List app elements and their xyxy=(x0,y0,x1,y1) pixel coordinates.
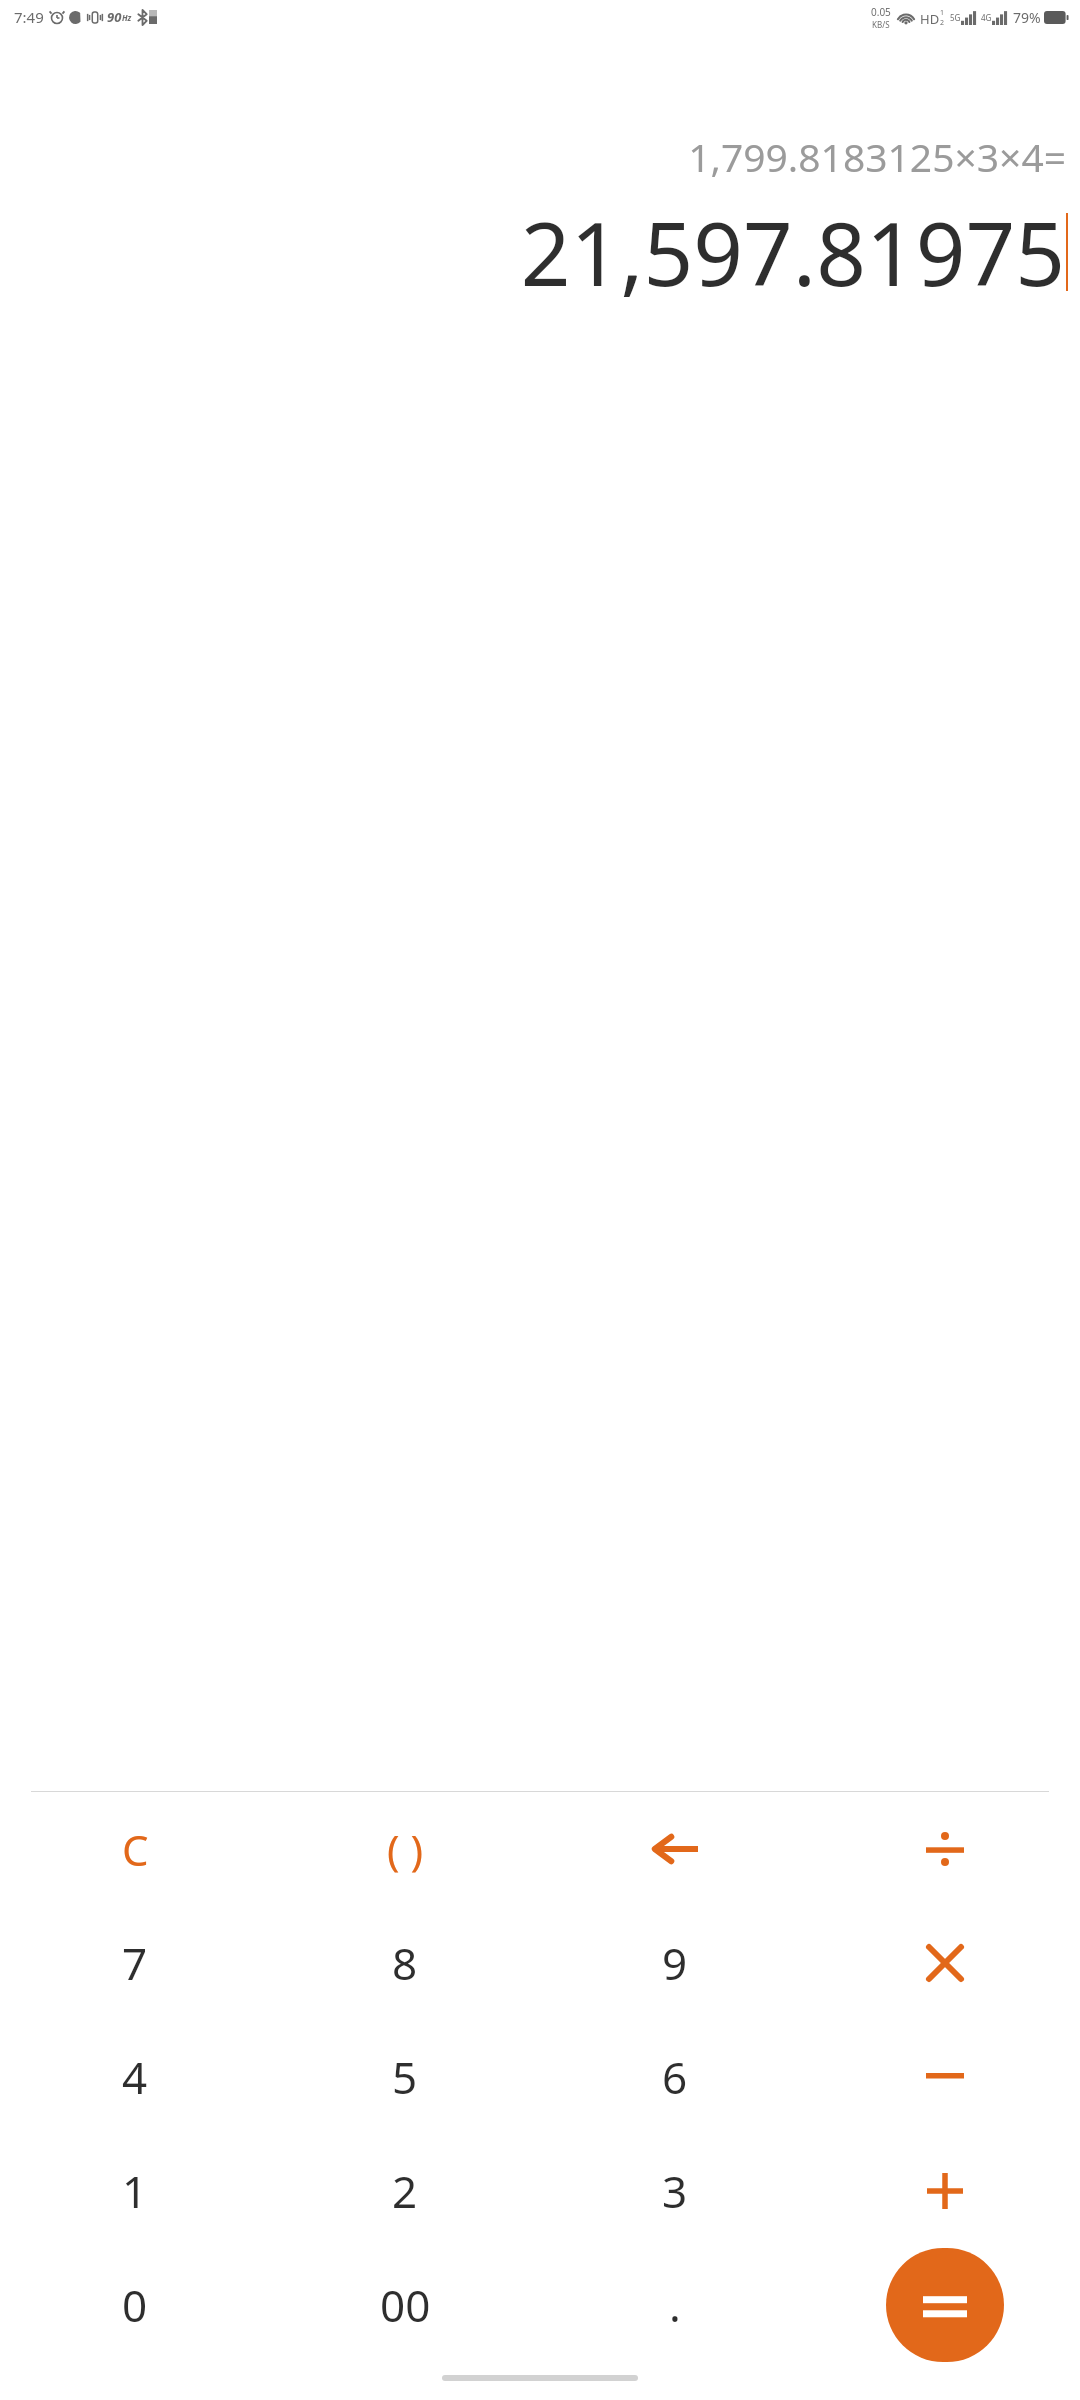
button[interactable]: 1 xyxy=(0,2134,270,2248)
staticText: 21,597.81975 xyxy=(520,193,1065,311)
staticText: 7 xyxy=(122,1933,148,1993)
button[interactable]: Multiply xyxy=(810,1906,1080,2020)
staticText: 4 xyxy=(122,2047,148,2107)
button[interactable]: 5 xyxy=(270,2020,540,2134)
staticText: 5G xyxy=(950,12,961,23)
staticText: HD xyxy=(920,10,940,28)
button[interactable]: 3 xyxy=(540,2134,810,2248)
staticText: 3 xyxy=(662,2161,688,2221)
button[interactable]: 6 xyxy=(540,2020,810,2134)
button[interactable]: 8 xyxy=(270,1906,540,2020)
button[interactable]: 9 xyxy=(540,1906,810,2020)
button[interactable]: ( ) xyxy=(270,1792,540,1906)
staticText: 8 xyxy=(392,1933,418,1993)
staticText: 6 xyxy=(662,2047,688,2107)
button[interactable]: C xyxy=(0,1792,270,1906)
staticText: Hz xyxy=(122,12,132,23)
staticText: . xyxy=(669,2275,681,2335)
button[interactable]: Plus xyxy=(810,2134,1080,2248)
staticText: 5 xyxy=(392,2047,418,2107)
staticText: 90 xyxy=(107,8,122,26)
button[interactable]: Backspace xyxy=(540,1792,810,1906)
staticText: 00 xyxy=(380,2275,431,2335)
staticText: 0.05 xyxy=(871,5,891,19)
staticText: 79% xyxy=(1013,8,1041,27)
staticText: 2 xyxy=(392,2161,418,2221)
staticText: 7:49 xyxy=(14,7,44,27)
staticText: 9 xyxy=(662,1933,688,1993)
button[interactable]: Divide xyxy=(810,1792,1080,1906)
button[interactable]: Minus xyxy=(810,2020,1080,2134)
staticText: 1 xyxy=(122,2161,148,2221)
button[interactable]: 0 xyxy=(0,2248,270,2362)
button[interactable]: Equals xyxy=(886,2248,1004,2362)
button[interactable]: 00 xyxy=(270,2248,540,2362)
button[interactable]: . xyxy=(540,2248,810,2362)
button[interactable]: 4 xyxy=(0,2020,270,2134)
button[interactable]: 2 xyxy=(270,2134,540,2248)
staticText: KB/S xyxy=(872,19,890,30)
staticText: 4G xyxy=(981,12,992,23)
button[interactable]: 7 xyxy=(0,1906,270,2020)
staticText: 1 xyxy=(940,8,945,18)
staticText: 0 xyxy=(122,2275,148,2335)
staticText: 2 xyxy=(940,18,945,28)
staticText: 1,799.8183125×3×4= xyxy=(688,130,1066,183)
staticText: ( ) xyxy=(387,1821,424,1878)
staticText: C xyxy=(122,1821,149,1878)
